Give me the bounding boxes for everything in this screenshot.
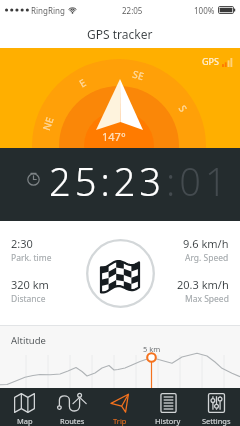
staticText: Altitude	[11, 334, 46, 347]
staticText: 2:30	[11, 236, 33, 251]
staticText: S	[177, 102, 191, 114]
staticText: Routes	[60, 416, 85, 426]
staticText: Settings	[202, 416, 231, 426]
staticText: 22:05	[122, 5, 143, 16]
staticText: 100%	[194, 5, 215, 16]
staticText: GPS	[202, 55, 219, 67]
staticText: GPS tracker	[87, 26, 153, 42]
staticText: SE	[132, 67, 146, 81]
staticText: History	[155, 416, 181, 426]
staticText: 20.3 km/h	[177, 277, 229, 292]
staticText: 9.6 km/h	[183, 236, 229, 251]
staticText: 5 km	[143, 344, 161, 354]
button[interactable]: Routes	[48, 388, 96, 426]
staticText: RingRing	[31, 5, 65, 16]
button[interactable]: History	[144, 388, 192, 426]
staticText: Map	[17, 416, 33, 426]
button[interactable]: Settings	[192, 388, 240, 426]
staticText: Trip	[113, 416, 127, 426]
button[interactable]: Map	[0, 388, 48, 426]
staticText: NE	[39, 114, 55, 131]
staticText: Arg. Speed	[185, 252, 229, 264]
staticText: 147°	[102, 129, 126, 144]
staticText: E	[76, 75, 88, 89]
button[interactable]: Trip	[96, 388, 144, 426]
staticText: 25:23	[49, 155, 166, 207]
staticText: 320 km	[11, 277, 49, 292]
staticText: Distance	[11, 293, 46, 305]
staticText: Park. time	[11, 252, 52, 264]
staticText: :01	[166, 155, 231, 207]
staticText: Max Speed	[185, 293, 229, 305]
